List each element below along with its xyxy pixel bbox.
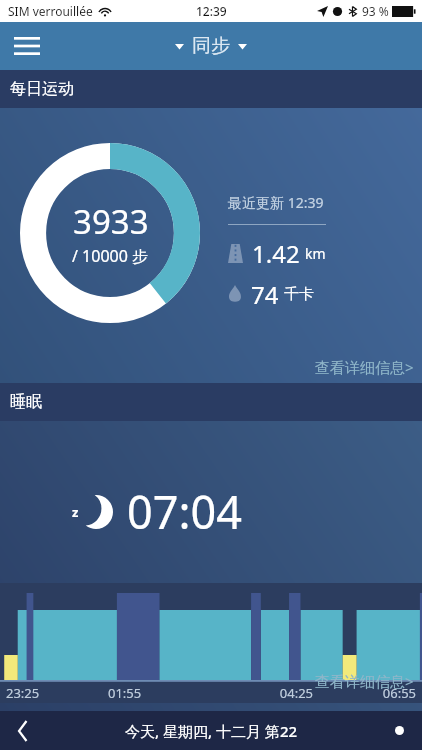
staticText: 同步 <box>192 34 230 58</box>
staticText: 1.42 <box>252 237 300 270</box>
staticText: 06:55 <box>313 684 416 702</box>
button[interactable]: 查看详细信息> <box>315 671 414 691</box>
button[interactable]: Next day <box>376 711 422 750</box>
staticText: 3933 <box>73 199 149 244</box>
button[interactable]: 查看详细信息> <box>315 357 422 383</box>
staticText: 睡眠 <box>10 392 42 412</box>
staticText: / 10000 步 <box>72 245 149 267</box>
staticText: 93 % <box>362 3 389 19</box>
button[interactable]: 3933 <box>0 108 422 383</box>
staticText: 74 <box>251 278 279 311</box>
staticText: SIM verrouillée <box>8 3 93 19</box>
staticText: 12:39 <box>196 3 227 19</box>
staticText: 每日运动 <box>10 79 74 99</box>
button[interactable]: Menu <box>6 25 48 67</box>
staticText: 23:25 <box>6 684 108 702</box>
staticText: 千卡 <box>284 285 314 304</box>
staticText: 01:55 <box>108 684 210 702</box>
button[interactable]: Previous day <box>0 711 46 750</box>
staticText: 查看详细信息> <box>315 357 414 377</box>
staticText: 查看详细信息> <box>315 671 414 691</box>
button[interactable]: 同步 <box>165 30 257 62</box>
staticText: 今天, 星期四, 十二月 第22 <box>125 721 298 741</box>
staticText: km <box>305 244 326 263</box>
staticText: 04:25 <box>210 684 313 702</box>
staticText: 07:04 <box>127 481 243 542</box>
staticText: z <box>72 503 79 521</box>
staticText: 最近更新 12:39 <box>228 193 324 212</box>
button[interactable]: z <box>0 421 422 711</box>
